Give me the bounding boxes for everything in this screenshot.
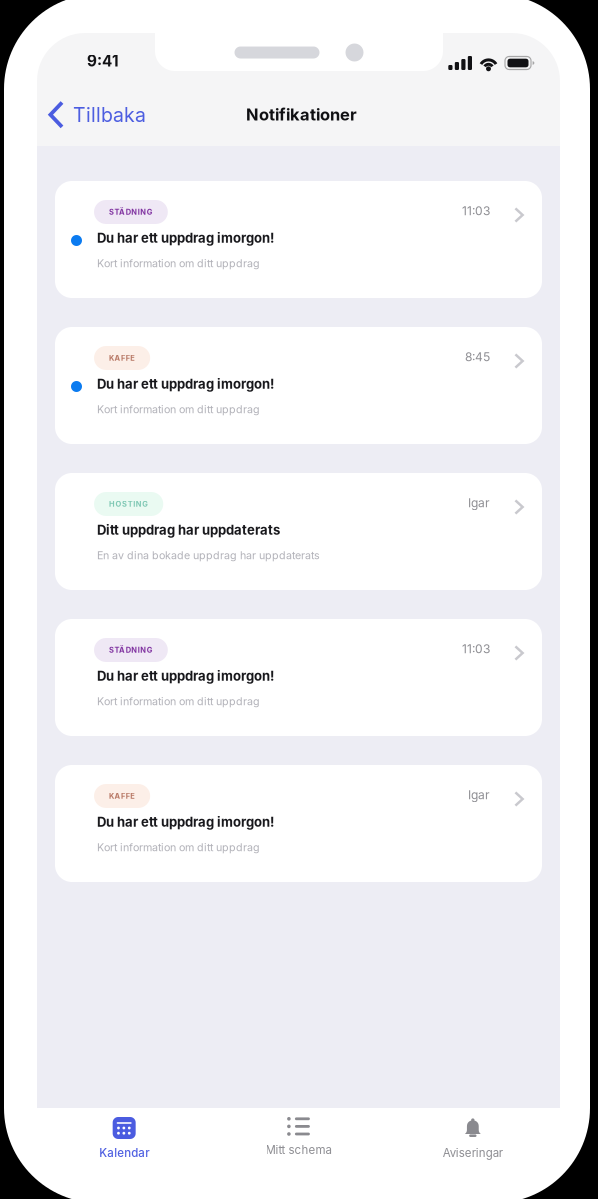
staticText: Kort information om ditt uppdrag <box>97 403 260 416</box>
button[interactable]: STÄDNING <box>55 619 542 736</box>
staticText: Tillbaka <box>73 103 146 127</box>
staticText: STÄDNING <box>109 207 153 216</box>
staticText: STÄDNING <box>109 645 153 654</box>
staticText: Igar <box>468 788 490 802</box>
staticText: Igar <box>468 496 490 510</box>
staticText: KAFFE <box>109 791 135 800</box>
staticText: En av dina bokade uppdrag har uppdaterat… <box>97 549 320 562</box>
staticText: Mitt schema <box>265 1143 331 1157</box>
staticText: Kort information om ditt uppdrag <box>97 841 260 854</box>
staticText: KAFFE <box>109 353 135 362</box>
staticText: Du har ett uppdrag imorgon! <box>97 376 274 392</box>
button[interactable]: HOSTING <box>55 473 542 590</box>
staticText: 11:03 <box>462 642 490 656</box>
button[interactable]: KAFFE <box>55 765 542 882</box>
staticText: HOSTING <box>109 499 148 508</box>
staticText: Kort information om ditt uppdrag <box>97 695 260 708</box>
staticText: Aviseringar <box>443 1146 503 1160</box>
staticText: Du har ett uppdrag imorgon! <box>97 814 274 830</box>
button[interactable]: Mitt schema <box>211 1108 386 1193</box>
staticText: Ditt uppdrag har uppdaterats <box>97 522 280 538</box>
staticText: 8:45 <box>465 350 490 364</box>
button[interactable]: Kalendar <box>37 1108 211 1193</box>
staticText: Kalendar <box>99 1146 149 1160</box>
button[interactable]: Aviseringar <box>386 1108 560 1193</box>
staticText: Notifikationer <box>246 105 357 124</box>
staticText: 9:41 <box>87 52 119 70</box>
staticText: Du har ett uppdrag imorgon! <box>97 668 274 684</box>
staticText: Kort information om ditt uppdrag <box>97 257 260 270</box>
button[interactable]: KAFFE <box>55 327 542 444</box>
staticText: 11:03 <box>462 204 490 218</box>
staticText: Du har ett uppdrag imorgon! <box>97 230 274 246</box>
button[interactable]: STÄDNING <box>55 181 542 298</box>
button[interactable]: Tillbaka <box>37 89 146 146</box>
